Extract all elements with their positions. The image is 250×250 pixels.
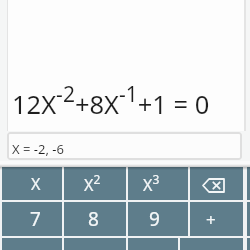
button[interactable]: X2 [64, 167, 126, 200]
button[interactable]: X3 [128, 167, 188, 200]
button[interactable]: + [190, 202, 243, 236]
button[interactable]: 8 [64, 202, 126, 236]
staticText: X2 [84, 171, 101, 196]
button[interactable]: X [2, 167, 62, 200]
staticText: + [206, 208, 216, 231]
staticText: 7 [30, 206, 41, 232]
staticText: 9 [149, 206, 160, 232]
staticText: 12X-2+8X-1+1 = 0 [12, 80, 210, 122]
staticText: 8 [88, 206, 99, 232]
button[interactable]: X = -2, -6 [7, 132, 242, 160]
button[interactable] [247, 167, 250, 200]
staticText: X [31, 173, 41, 195]
staticText: X3 [143, 171, 160, 196]
button[interactable]: 9 [128, 202, 188, 236]
button[interactable]: 7 [2, 202, 62, 236]
staticText: X = -2, -6 [12, 140, 64, 158]
button[interactable] [190, 167, 243, 200]
